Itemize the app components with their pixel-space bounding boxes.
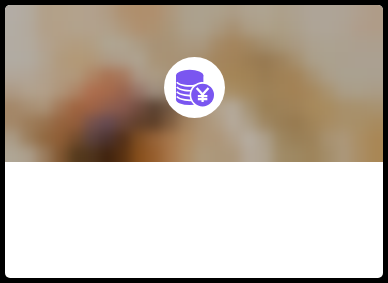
button[interactable]: Coins: [164, 57, 225, 118]
